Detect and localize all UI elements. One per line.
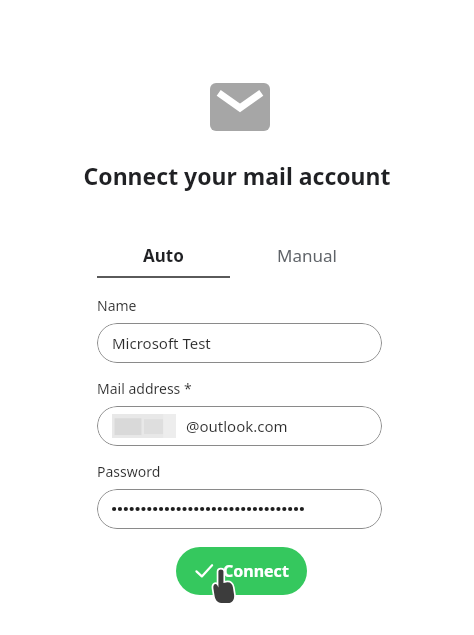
staticText: Auto [143, 244, 184, 267]
staticText: Connect your mail account [0, 160, 474, 191]
staticText: Name [97, 296, 137, 315]
button[interactable]: Microsoft Test [97, 323, 382, 363]
button[interactable]: Auto [97, 244, 230, 278]
button[interactable]: Manual [240, 244, 373, 278]
button[interactable]: Connect [176, 547, 307, 595]
staticText: @outlook.com [186, 416, 288, 436]
button[interactable] [97, 489, 382, 529]
staticText: Microsoft Test [112, 333, 211, 353]
staticText: Connect [223, 560, 289, 582]
staticText: Manual [277, 244, 337, 267]
button[interactable]: @outlook.com [97, 406, 382, 446]
staticText: Password [97, 462, 161, 481]
staticText: Mail address * [97, 379, 192, 398]
